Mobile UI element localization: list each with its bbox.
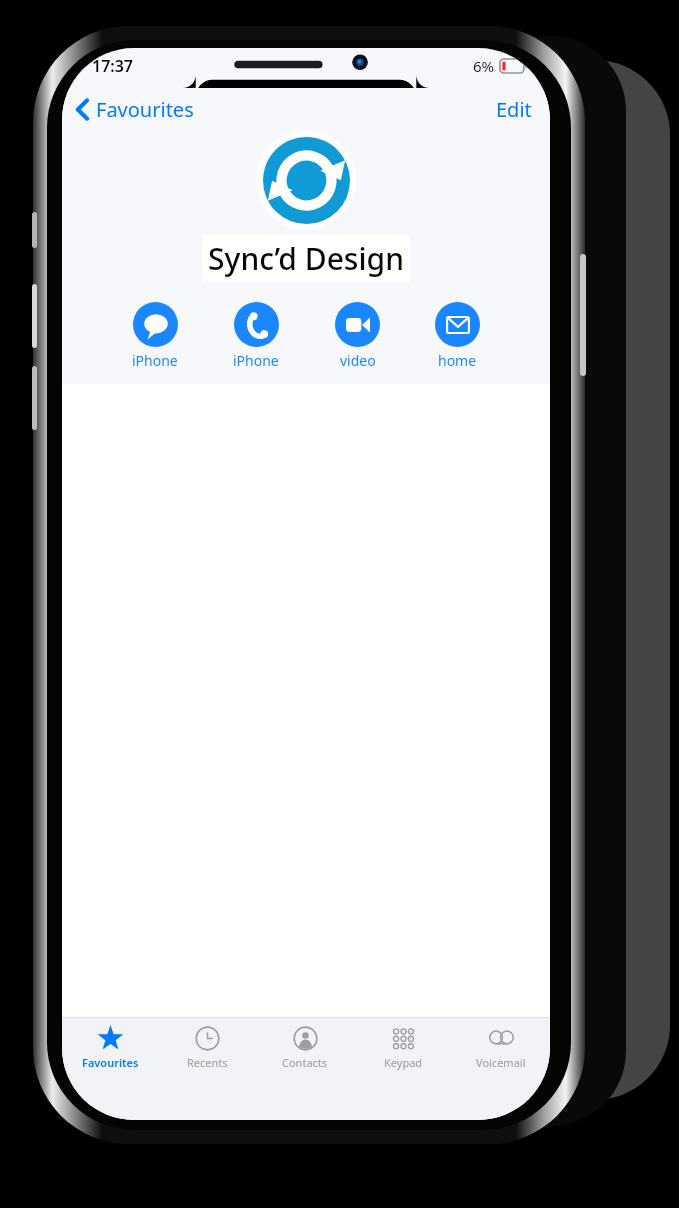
staticText: 17:37	[92, 55, 134, 77]
staticText: Edit	[496, 96, 532, 123]
staticText: Keypad	[384, 1055, 423, 1070]
staticText: Contacts	[282, 1055, 328, 1070]
button[interactable]: Keypad	[354, 1018, 452, 1086]
staticText: Sync’d Design	[208, 238, 404, 279]
staticText: Voicemail	[476, 1055, 526, 1070]
staticText: Favourites	[96, 96, 194, 123]
staticText: iPhone	[233, 351, 279, 370]
staticText: Recents	[187, 1055, 228, 1070]
button[interactable]: Favourites	[62, 1018, 159, 1086]
button[interactable]: Recents	[159, 1018, 256, 1086]
staticText: video	[340, 351, 376, 370]
staticText: home	[438, 351, 477, 370]
button[interactable]: Mail	[435, 302, 480, 370]
button[interactable]: Edit	[478, 90, 550, 129]
button[interactable]: Call	[233, 302, 279, 370]
staticText: Favourites	[82, 1055, 139, 1070]
button[interactable]: Contacts	[256, 1018, 354, 1086]
button[interactable]: Favourites	[62, 90, 204, 129]
staticText: 6%	[473, 56, 495, 76]
button[interactable]: Voicemail	[452, 1018, 550, 1086]
button[interactable]: Message	[132, 302, 178, 370]
staticText: iPhone	[132, 351, 178, 370]
button[interactable]: Video call	[335, 302, 380, 370]
